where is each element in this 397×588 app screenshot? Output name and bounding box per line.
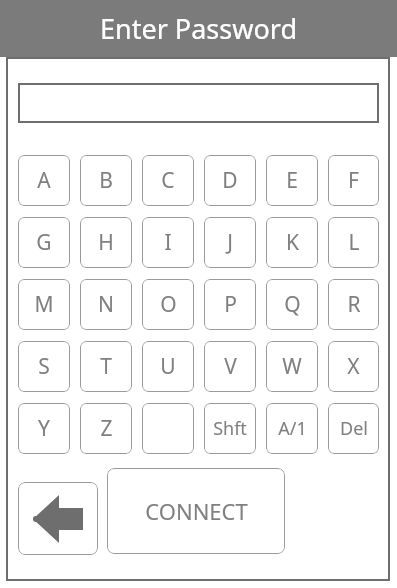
staticText: S xyxy=(38,352,50,381)
staticText: M xyxy=(34,290,54,319)
button[interactable]: V xyxy=(204,341,256,392)
staticText: K xyxy=(286,228,299,257)
button[interactable]: Del xyxy=(328,403,379,454)
button[interactable]: P xyxy=(204,279,256,330)
staticText: H xyxy=(98,228,114,257)
button[interactable]: S xyxy=(18,341,70,392)
staticText: G xyxy=(36,228,52,257)
staticText: A xyxy=(37,166,51,195)
button[interactable]: G xyxy=(18,217,70,268)
button[interactable]: A/1 xyxy=(266,403,318,454)
button[interactable]: A xyxy=(18,155,70,206)
button[interactable] xyxy=(18,83,379,123)
button[interactable]: Z xyxy=(80,403,132,454)
staticText: W xyxy=(282,352,302,381)
staticText: P xyxy=(224,290,237,319)
button[interactable]: W xyxy=(266,341,318,392)
button[interactable]: N xyxy=(80,279,132,330)
staticText: L xyxy=(348,228,360,257)
button[interactable]: Shft xyxy=(204,403,256,454)
button[interactable]: B xyxy=(80,155,132,206)
button[interactable]: T xyxy=(80,341,132,392)
staticText: CONNECT xyxy=(145,496,248,526)
staticText: Del xyxy=(340,416,368,441)
staticText: N xyxy=(98,290,114,319)
button[interactable]: F xyxy=(328,155,379,206)
button[interactable]: X xyxy=(328,341,379,392)
staticText: Enter Password xyxy=(100,10,297,47)
button[interactable]: O xyxy=(142,279,194,330)
button[interactable]: L xyxy=(328,217,379,268)
button[interactable]: H xyxy=(80,217,132,268)
staticText: X xyxy=(347,352,360,381)
staticText: D xyxy=(222,166,238,195)
button[interactable]: Y xyxy=(18,403,70,454)
button[interactable]: J xyxy=(204,217,256,268)
staticText: U xyxy=(160,352,176,381)
staticText: J xyxy=(227,228,233,257)
button[interactable]: CONNECT xyxy=(107,468,285,554)
staticText: V xyxy=(224,352,237,381)
button[interactable]: I xyxy=(142,217,194,268)
staticText: T xyxy=(100,352,112,381)
staticText: Y xyxy=(38,414,50,443)
staticText: B xyxy=(99,166,113,195)
button[interactable]: K xyxy=(266,217,318,268)
button[interactable]: C xyxy=(142,155,194,206)
button[interactable] xyxy=(142,403,194,454)
button[interactable]: R xyxy=(328,279,379,330)
button[interactable]: U xyxy=(142,341,194,392)
button[interactable]: M xyxy=(18,279,70,330)
button[interactable]: Back xyxy=(18,482,98,555)
staticText: C xyxy=(161,166,175,195)
staticText: E xyxy=(286,166,298,195)
staticText: Z xyxy=(100,414,113,443)
staticText: I xyxy=(164,228,172,257)
button[interactable]: Q xyxy=(266,279,318,330)
button[interactable]: E xyxy=(266,155,318,206)
staticText: Shft xyxy=(213,416,247,441)
staticText: Q xyxy=(284,290,301,319)
button[interactable]: D xyxy=(204,155,256,206)
staticText: A/1 xyxy=(278,416,307,441)
staticText: F xyxy=(348,166,359,195)
staticText: O xyxy=(160,290,177,319)
staticText: R xyxy=(347,290,361,319)
